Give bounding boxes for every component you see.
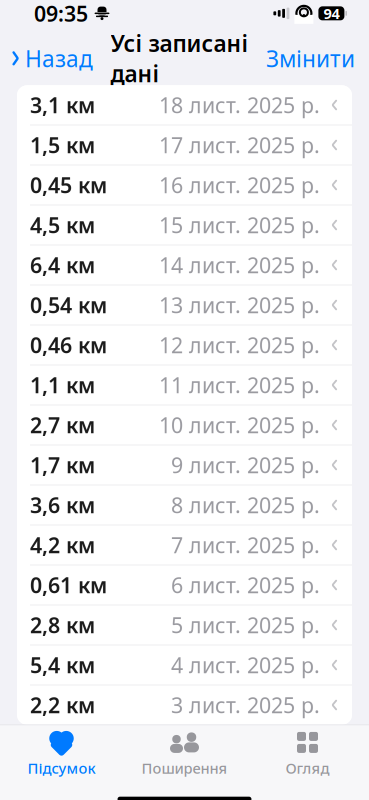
staticText: 3 лист. 2025 р. (171, 691, 320, 719)
button[interactable]: Підсумок (0, 722, 123, 778)
staticText: 6,4 км (30, 251, 95, 279)
staticText: 1,7 км (30, 451, 95, 479)
button[interactable]: 1,7 км (17, 445, 352, 485)
staticText: 11 лист. 2025 р. (159, 371, 320, 399)
staticText: 0,61 км (30, 571, 107, 599)
staticText: 10 лист. 2025 р. (159, 411, 320, 439)
button[interactable]: 0,61 км (17, 565, 352, 605)
button[interactable]: Назад (0, 37, 93, 79)
staticText: 2,8 км (30, 611, 95, 639)
staticText: Огляд (285, 758, 329, 778)
staticText: 0,54 км (30, 291, 107, 319)
staticText: 14 лист. 2025 р. (159, 251, 320, 279)
button[interactable]: 0,46 км (17, 325, 352, 365)
staticText: 0,46 км (30, 331, 107, 359)
button[interactable]: Огляд (246, 722, 369, 778)
staticText: 8 лист. 2025 р. (171, 491, 320, 519)
staticText: 5,4 км (30, 651, 95, 679)
button[interactable]: 6,4 км (17, 245, 352, 285)
staticText: 1,5 км (30, 131, 95, 159)
staticText: 15 лист. 2025 р. (159, 211, 320, 239)
button[interactable]: 3,6 км (17, 485, 352, 525)
staticText: Підсумок (27, 758, 95, 778)
staticText: 18 лист. 2025 р. (159, 91, 320, 119)
staticText: 4,5 км (30, 211, 95, 239)
button[interactable]: 0,45 км (17, 165, 352, 205)
staticText: 0,45 км (30, 171, 107, 199)
staticText: 6 лист. 2025 р. (171, 571, 320, 599)
staticText: 2,7 км (30, 411, 95, 439)
staticText: Поширення (141, 758, 227, 778)
button[interactable]: 4,2 км (17, 525, 352, 565)
button[interactable]: Змінити (266, 37, 369, 79)
button[interactable]: 2,2 км (17, 685, 352, 725)
button[interactable]: 1,1 км (17, 365, 352, 405)
button[interactable]: 0,54 км (17, 285, 352, 325)
staticText: 5 лист. 2025 р. (171, 611, 320, 639)
button[interactable]: 1,5 км (17, 125, 352, 165)
staticText: 9 лист. 2025 р. (171, 451, 320, 479)
staticText: 13 лист. 2025 р. (159, 291, 320, 319)
button[interactable]: 2,7 км (17, 405, 352, 445)
staticText: Змінити (266, 43, 355, 73)
staticText: 3,6 км (30, 491, 95, 519)
button[interactable]: Поширення (123, 722, 246, 778)
staticText: Усі записані дані (110, 28, 248, 88)
staticText: Назад (25, 43, 93, 73)
staticText: 17 лист. 2025 р. (159, 131, 320, 159)
staticText: 4 лист. 2025 р. (171, 651, 320, 679)
staticText: 09:35 (34, 0, 88, 27)
staticText: 3,1 км (30, 91, 95, 119)
button[interactable]: 4,5 км (17, 205, 352, 245)
staticText: 4,2 км (30, 531, 95, 559)
staticText: 16 лист. 2025 р. (159, 171, 320, 199)
button[interactable]: 3,1 км (17, 85, 352, 125)
staticText: 94 (323, 4, 339, 23)
staticText: 12 лист. 2025 р. (159, 331, 320, 359)
button[interactable]: 2,8 км (17, 605, 352, 645)
button[interactable]: 5,4 км (17, 645, 352, 685)
staticText: 7 лист. 2025 р. (171, 531, 320, 559)
staticText: 1,1 км (30, 371, 95, 399)
staticText: 2,2 км (30, 691, 95, 719)
